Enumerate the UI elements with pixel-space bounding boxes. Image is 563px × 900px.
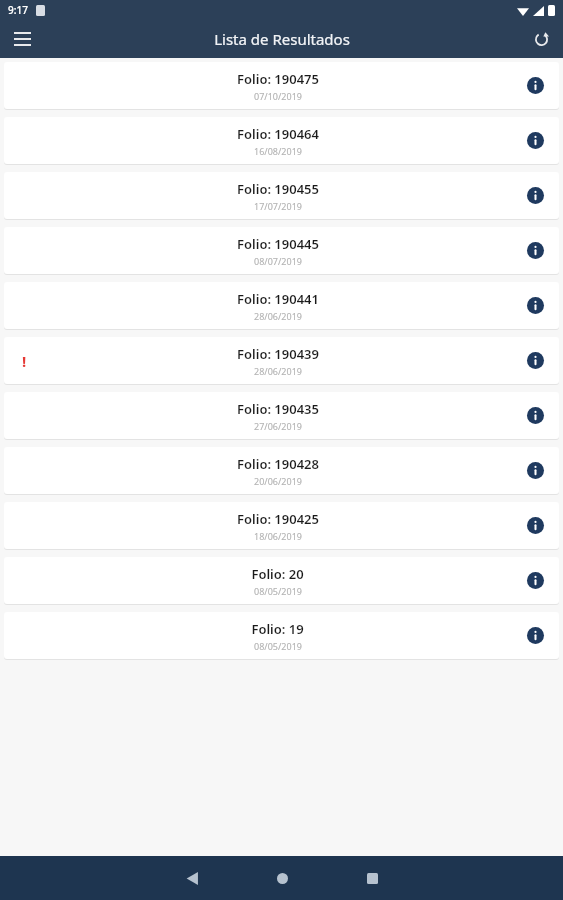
staticText: Folio: 190441 (237, 290, 319, 308)
button[interactable]: Folio: 190441 (4, 282, 559, 329)
staticText: 20/06/2019 (254, 475, 302, 487)
button[interactable]: Folio: 190455 (4, 172, 559, 219)
button[interactable]: Back (147, 856, 237, 900)
staticText: Folio: 190435 (237, 400, 319, 418)
button[interactable]: Home (237, 856, 327, 900)
button[interactable]: Recents (327, 856, 417, 900)
staticText: Folio: 190428 (237, 455, 319, 473)
button[interactable]: Info (511, 117, 559, 164)
staticText: Folio: 190475 (237, 70, 319, 88)
staticText: 9:17 (8, 3, 28, 17)
button[interactable]: Info (511, 612, 559, 659)
button[interactable]: Info (511, 227, 559, 274)
staticText: 27/06/2019 (254, 420, 302, 432)
button[interactable]: Folio: 190425 (4, 502, 559, 549)
staticText: 08/05/2019 (254, 585, 302, 597)
staticText: 28/06/2019 (254, 310, 302, 322)
staticText: ! (22, 351, 27, 371)
staticText: Folio: 20 (251, 565, 304, 583)
button[interactable]: Info (511, 392, 559, 439)
button[interactable]: Folio: 190475 (4, 62, 559, 109)
button[interactable]: Folio: 190435 (4, 392, 559, 439)
staticText: Folio: 190464 (237, 125, 319, 143)
staticText: 16/08/2019 (254, 145, 302, 157)
staticText: 28/06/2019 (254, 365, 302, 377)
button[interactable]: Folio: 190428 (4, 447, 559, 494)
button[interactable]: Folio: 20 (4, 557, 559, 604)
staticText: Folio: 190439 (237, 345, 319, 363)
staticText: 17/07/2019 (254, 200, 302, 212)
button[interactable]: Info (511, 62, 559, 109)
button[interactable]: Folio: 190445 (4, 227, 559, 274)
button[interactable]: Folio: 190464 (4, 117, 559, 164)
button[interactable]: ! (4, 337, 559, 384)
button[interactable]: Info (511, 557, 559, 604)
staticText: 18/06/2019 (254, 530, 302, 542)
staticText: Folio: 190455 (237, 180, 319, 198)
button[interactable]: Refresh (525, 23, 557, 55)
staticText: Folio: 190425 (237, 510, 319, 528)
button[interactable]: Folio: 19 (4, 612, 559, 659)
button[interactable]: Info (511, 172, 559, 219)
staticText: 07/10/2019 (254, 90, 302, 102)
staticText: Lista de Resultados (214, 29, 350, 49)
button[interactable]: Info (511, 502, 559, 549)
button[interactable]: Info (511, 282, 559, 329)
staticText: Folio: 19 (251, 620, 304, 638)
staticText: 08/07/2019 (254, 255, 302, 267)
staticText: 08/05/2019 (254, 640, 302, 652)
button[interactable]: Menu (6, 23, 38, 55)
staticText: Folio: 190445 (237, 235, 319, 253)
button[interactable]: Info (511, 447, 559, 494)
button[interactable]: Info (511, 337, 559, 384)
